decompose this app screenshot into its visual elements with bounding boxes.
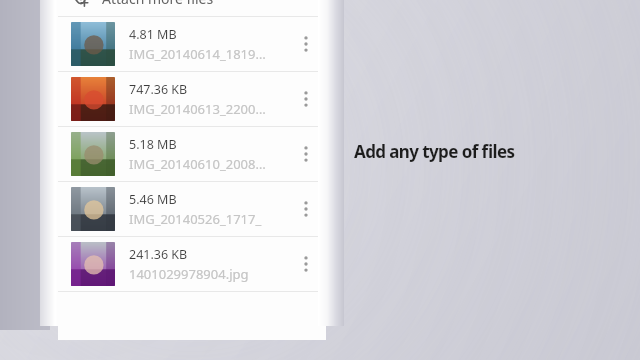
staticText: IMG_20140610_2008…: [129, 155, 266, 173]
staticText: IMG_20140614_1819…: [129, 45, 266, 63]
button[interactable]: More options: [294, 244, 318, 284]
button[interactable]: 5.18 MB: [58, 127, 326, 181]
staticText: Attach more files: [102, 0, 214, 8]
staticText: 5.46 MB: [129, 191, 177, 208]
button[interactable]: 5.46 MB: [58, 182, 326, 236]
staticText: Add any type of files: [354, 140, 554, 163]
button[interactable]: More options: [294, 134, 318, 174]
button[interactable]: 747.36 KB: [58, 72, 326, 126]
button[interactable]: More options: [294, 79, 318, 119]
button[interactable]: 241.36 KB: [58, 237, 326, 291]
button[interactable]: More options: [294, 189, 318, 229]
button[interactable]: 4.81 MB: [58, 17, 326, 71]
button[interactable]: Attach more files: [58, 0, 326, 16]
staticText: 747.36 KB: [129, 81, 188, 98]
staticText: 241.36 KB: [129, 246, 188, 263]
button[interactable]: More options: [294, 24, 318, 64]
staticText: 1401029978904.jpg: [129, 265, 249, 283]
staticText: IMG_20140613_2200…: [129, 100, 266, 118]
staticText: 5.18 MB: [129, 136, 177, 153]
staticText: 4.81 MB: [129, 26, 177, 43]
staticText: IMG_20140526_1717_: [129, 210, 262, 228]
other: Attach more files: [70, 0, 90, 8]
